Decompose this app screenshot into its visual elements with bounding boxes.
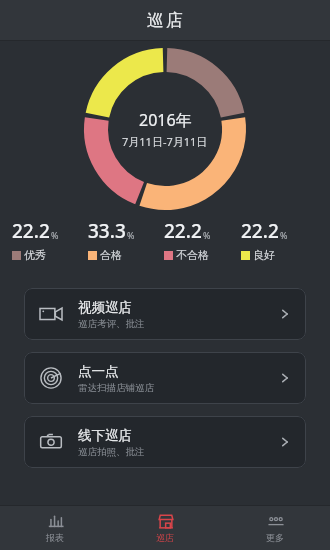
staticText: 线下巡店 bbox=[78, 427, 132, 444]
staticText: % bbox=[127, 229, 135, 241]
staticText: 22.2 bbox=[241, 218, 279, 244]
staticText: % bbox=[51, 229, 59, 241]
staticText: 22.2 bbox=[12, 218, 50, 244]
staticText: 不合格 bbox=[176, 248, 209, 262]
staticText: 报表 bbox=[46, 532, 64, 543]
staticText: 雷达扫描店铺巡店 bbox=[78, 382, 154, 394]
button[interactable]: 22.2 bbox=[12, 218, 88, 262]
button[interactable]: Video inspection bbox=[24, 288, 306, 340]
button[interactable]: Store inspection bbox=[110, 506, 220, 550]
button[interactable]: Radar scan bbox=[24, 352, 306, 404]
staticText: 巡店 bbox=[146, 10, 184, 31]
button[interactable]: 22.2 bbox=[164, 218, 241, 262]
other: Offline inspection camera bbox=[39, 430, 63, 454]
staticText: 巡店考评、批注 bbox=[78, 318, 145, 330]
other: Reports bbox=[47, 512, 65, 530]
staticText: 巡店拍照、批注 bbox=[78, 446, 145, 458]
staticText: % bbox=[280, 229, 288, 241]
other: More bbox=[267, 512, 285, 530]
staticText: 33.3 bbox=[88, 218, 126, 244]
other: Radar scan bbox=[39, 366, 63, 390]
button[interactable]: More bbox=[220, 506, 330, 550]
staticText: 更多 bbox=[266, 532, 284, 543]
staticText: 22.2 bbox=[164, 218, 202, 244]
staticText: % bbox=[203, 229, 211, 241]
button[interactable]: Offline inspection camera bbox=[24, 416, 306, 468]
staticText: 点一点 bbox=[78, 363, 119, 380]
button[interactable]: 22.2 bbox=[241, 218, 318, 262]
staticText: 合格 bbox=[100, 248, 122, 262]
other: Video inspection bbox=[39, 302, 63, 326]
staticText: 巡店 bbox=[156, 532, 174, 543]
staticText: 2016年 bbox=[139, 109, 192, 131]
button[interactable]: 33.3 bbox=[88, 218, 164, 262]
staticText: 优秀 bbox=[24, 248, 46, 262]
staticText: 良好 bbox=[253, 248, 275, 262]
other: Store inspection bbox=[157, 512, 175, 530]
staticText: 视频巡店 bbox=[78, 299, 132, 316]
staticText: 7月11日-7月11日 bbox=[122, 134, 208, 149]
button[interactable]: Reports bbox=[0, 506, 110, 550]
